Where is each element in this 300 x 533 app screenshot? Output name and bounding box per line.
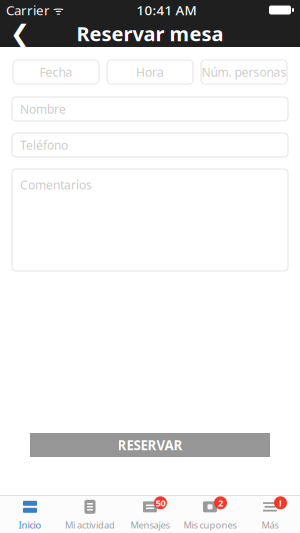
staticText: Más — [261, 519, 278, 531]
staticText: Comentarios — [20, 177, 92, 193]
staticText: ❮ — [10, 20, 30, 47]
button[interactable]: Mi actividad — [60, 496, 120, 532]
button[interactable]: Comentarios — [12, 169, 288, 271]
staticText: 50 — [155, 497, 165, 509]
staticText: Hora — [136, 64, 164, 80]
button[interactable]: Hora — [107, 60, 193, 84]
staticText: Reservar mesa — [76, 20, 223, 47]
staticText: 10:41 AM — [136, 1, 196, 19]
staticText: Nombre — [20, 101, 66, 117]
button[interactable]: Teléfono — [12, 133, 288, 157]
button[interactable]: ! — [240, 496, 300, 532]
staticText: ! — [279, 497, 282, 509]
staticText: Mis cupones — [183, 519, 236, 531]
button[interactable]: Fecha — [13, 60, 99, 84]
button[interactable]: Back — [0, 20, 40, 47]
staticText: Carrier — [6, 1, 50, 19]
staticText: RESERVAR — [117, 436, 182, 454]
button[interactable]: Nombre — [12, 97, 288, 121]
staticText: Inicio — [18, 519, 41, 531]
staticText: ᯤ — [50, 2, 64, 18]
staticText: Núm. personas — [201, 64, 286, 80]
button[interactable]: 50 — [120, 496, 180, 532]
staticText: Mensajes — [130, 519, 169, 531]
button[interactable]: Núm. personas — [201, 60, 287, 84]
button[interactable]: RESERVAR — [30, 433, 270, 457]
staticText: 2 — [218, 497, 223, 509]
button[interactable]: 2 — [180, 496, 240, 532]
button[interactable]: Inicio — [0, 496, 60, 532]
staticText: Mi actividad — [65, 519, 115, 531]
staticText: Fecha — [39, 64, 72, 80]
staticText: Teléfono — [20, 137, 68, 153]
